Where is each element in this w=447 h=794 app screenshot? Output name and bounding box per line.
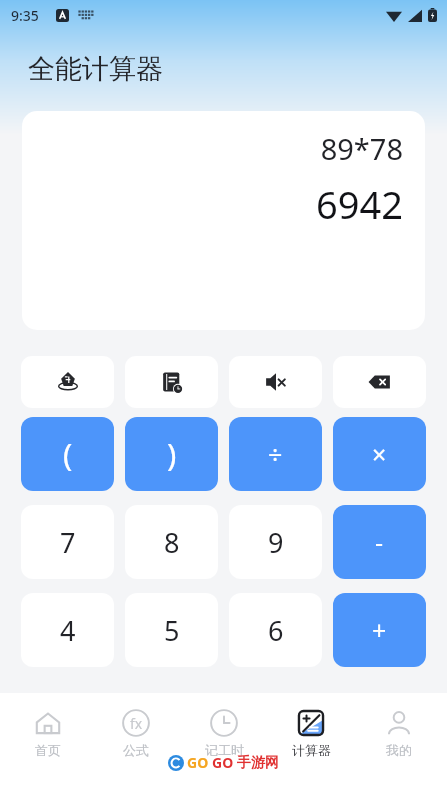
- button[interactable]: fx: [96, 705, 176, 762]
- button[interactable]: (: [21, 417, 114, 491]
- staticText: 4: [60, 612, 76, 649]
- staticText: 8: [164, 524, 180, 561]
- button[interactable]: 计算器: [271, 705, 351, 762]
- staticText: 计算器: [292, 742, 331, 758]
- button[interactable]: Mute: [229, 356, 322, 408]
- staticText: 6942: [316, 178, 403, 230]
- staticText: GO: [212, 753, 234, 772]
- staticText: 5: [164, 612, 180, 649]
- button[interactable]: 首页: [8, 705, 88, 762]
- staticText: 公式: [123, 742, 149, 758]
- button[interactable]: 6: [229, 593, 322, 667]
- button[interactable]: 我的: [359, 705, 439, 762]
- button[interactable]: ): [125, 417, 218, 491]
- staticText: 我的: [386, 742, 412, 758]
- staticText: 7: [60, 524, 76, 561]
- staticText: (: [63, 433, 73, 475]
- staticText: +: [372, 613, 387, 647]
- staticText: 记工时: [205, 742, 244, 758]
- staticText: 89*78: [320, 129, 403, 168]
- staticText: fx: [130, 714, 143, 733]
- button[interactable]: +: [333, 593, 426, 667]
- staticText: 6: [268, 612, 284, 649]
- staticText: 首页: [35, 742, 61, 758]
- button[interactable]: 7: [21, 505, 114, 579]
- staticText: 9: [268, 524, 284, 561]
- staticText: ): [167, 433, 177, 475]
- button[interactable]: 9: [229, 505, 322, 579]
- button[interactable]: -: [333, 505, 426, 579]
- button[interactable]: 5: [125, 593, 218, 667]
- button[interactable]: 8: [125, 505, 218, 579]
- staticText: 手游网: [237, 754, 279, 772]
- staticText: 全能计算器: [28, 52, 163, 86]
- staticText: 9:35: [11, 6, 39, 25]
- staticText: ÷: [268, 437, 283, 471]
- button[interactable]: Delete: [333, 356, 426, 408]
- button[interactable]: 记工时: [184, 705, 264, 762]
- staticText: ×: [372, 437, 387, 471]
- button[interactable]: ÷: [229, 417, 322, 491]
- button[interactable]: 4: [21, 593, 114, 667]
- button[interactable]: Scientific mode: [21, 356, 114, 408]
- button[interactable]: History: [125, 356, 218, 408]
- staticText: GO: [187, 753, 209, 772]
- button[interactable]: ×: [333, 417, 426, 491]
- staticText: -: [375, 525, 384, 559]
